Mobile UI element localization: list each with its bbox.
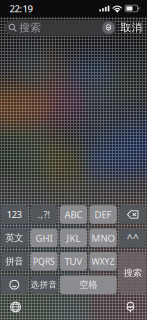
staticText: ABC	[64, 208, 82, 221]
button[interactable]: 英文	[1, 229, 28, 247]
staticText: 123	[7, 208, 22, 221]
button[interactable]: TUV	[60, 252, 87, 271]
staticText: 英文	[5, 232, 23, 244]
staticText: .,?!	[37, 208, 50, 221]
button[interactable]: Face keyboard	[119, 229, 146, 247]
button[interactable]: 搜索	[119, 252, 146, 294]
staticText: 搜索	[19, 21, 41, 34]
staticText: GHI	[35, 231, 52, 244]
button[interactable]: MNO	[89, 229, 117, 247]
button[interactable]: Dictate	[102, 21, 115, 34]
button[interactable]: WXYZ	[89, 252, 117, 271]
button[interactable]: Next keyboard	[3, 297, 29, 317]
staticText: ^^	[127, 231, 139, 245]
button[interactable]: Delete	[119, 205, 146, 224]
staticText: WXYZ	[92, 255, 115, 267]
staticText: TUV	[64, 255, 82, 268]
button[interactable]: 空格	[60, 275, 117, 294]
button[interactable]: .,?!	[30, 205, 58, 224]
button[interactable]: Dictation	[117, 297, 143, 317]
staticText: 拼音	[5, 255, 23, 267]
button[interactable]: Emoji	[1, 275, 28, 294]
staticText: 22:19	[10, 2, 33, 15]
staticText: PQRS	[33, 255, 55, 267]
button[interactable]: PQRS	[30, 252, 58, 271]
staticText: 搜索	[124, 267, 142, 279]
button[interactable]: GHI	[30, 229, 58, 247]
staticText: JKL	[66, 231, 80, 244]
button[interactable]: 选拼音	[30, 275, 58, 294]
button[interactable]: 取消	[120, 20, 142, 35]
button[interactable]: 拼音	[1, 252, 28, 271]
button[interactable]: DEF	[89, 205, 117, 224]
staticText: MNO	[92, 231, 115, 244]
staticText: 空格	[79, 279, 97, 291]
button[interactable]: 123	[1, 205, 28, 224]
staticText: 选拼音	[30, 279, 57, 290]
staticText: DEF	[95, 208, 112, 221]
button[interactable]: JKL	[60, 229, 87, 247]
staticText: 取消	[120, 21, 142, 34]
button[interactable]: ABC	[60, 205, 87, 224]
